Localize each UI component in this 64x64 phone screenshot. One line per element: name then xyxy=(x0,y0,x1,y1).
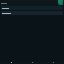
button[interactable] xyxy=(1,11,63,15)
button[interactable]: Profile xyxy=(58,0,63,5)
button[interactable]: Search xyxy=(22,61,43,64)
button[interactable] xyxy=(1,6,63,10)
button[interactable]: Library xyxy=(43,61,64,64)
button[interactable]: Home xyxy=(0,61,22,64)
